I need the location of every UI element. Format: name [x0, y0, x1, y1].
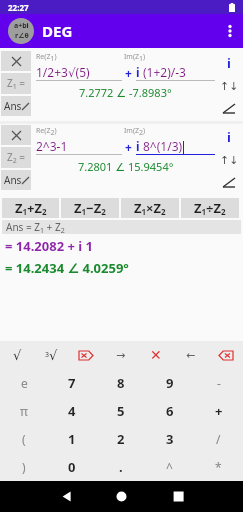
button[interactable]: - [194, 369, 243, 397]
staticText: Im(Z2) [124, 126, 146, 137]
button[interactable]: 7 [48, 369, 96, 397]
staticText: π [20, 403, 28, 419]
staticText: Ans [4, 173, 22, 187]
staticText: Z1×Z2 [134, 199, 166, 218]
staticText: e [21, 375, 28, 391]
staticText: 8^(1/3) [143, 138, 183, 154]
button[interactable]: π [0, 397, 48, 425]
staticText: + [122, 65, 136, 81]
button[interactable]: 1 [48, 425, 96, 453]
staticText: → [116, 349, 126, 362]
staticText: 4 [68, 402, 76, 420]
staticText: r∠θ [15, 31, 29, 41]
button[interactable]: . [96, 453, 145, 481]
staticText: ^ [166, 459, 173, 475]
staticText: 22:27 [8, 2, 29, 13]
staticText: Z2 = [7, 150, 26, 165]
staticText: ← [186, 349, 196, 362]
button[interactable]: Square root [0, 341, 34, 369]
staticText: ✕ [150, 347, 162, 363]
staticText: 0 [68, 458, 76, 476]
button[interactable]: 6 [145, 397, 194, 425]
button[interactable]: App icon [8, 18, 34, 44]
staticText: * [215, 459, 222, 475]
staticText: i [136, 138, 143, 154]
staticText: 3 [166, 430, 174, 448]
staticText: 7 [68, 374, 76, 392]
button[interactable]: 9 [145, 369, 194, 397]
staticText: 7.2772 ∠ -7.8983° [79, 85, 172, 100]
button[interactable]: Z2 equals [1, 147, 31, 168]
button[interactable]: Polar form [217, 98, 241, 118]
button[interactable]: 5 [96, 397, 145, 425]
staticText: Ans [4, 99, 22, 113]
button[interactable]: + [194, 397, 243, 425]
staticText: 3√ [45, 348, 58, 363]
staticText: i [227, 54, 231, 72]
button[interactable]: e [0, 369, 48, 397]
button[interactable]: Swap [217, 150, 241, 170]
staticText: 2 [117, 430, 125, 448]
staticText: Z1+Z2 [15, 199, 47, 218]
button[interactable]: Clear Z1 [1, 51, 31, 71]
button[interactable]: Clear Z2 [1, 125, 31, 145]
button[interactable]: Imaginary mode [217, 53, 241, 73]
button[interactable]: Z1÷Z2 [181, 198, 239, 218]
button[interactable]: / [194, 425, 243, 453]
staticText: Z1 = [7, 76, 26, 91]
staticText: Ans = Z1 + Z2 [6, 220, 65, 234]
staticText: Re(Z2) [36, 126, 124, 137]
button[interactable]: Move right [103, 341, 138, 369]
button[interactable]: 4 [48, 397, 96, 425]
button[interactable]: Backspace [208, 341, 243, 369]
button[interactable]: Use answer for Z2 [1, 170, 31, 190]
button[interactable]: 3 [145, 425, 194, 453]
button[interactable]: Cube root [34, 341, 68, 369]
staticText: = 14.2434 ∠ 4.0259° [5, 259, 129, 277]
staticText: 9 [166, 374, 174, 392]
staticText: Z1÷Z2 [194, 199, 226, 218]
button[interactable]: * [194, 453, 243, 481]
staticText: 5 [117, 402, 125, 420]
staticText: 1/2+3√(5) [36, 64, 90, 80]
staticText: / [216, 431, 221, 447]
staticText: i [136, 64, 143, 80]
staticText: ( [22, 431, 26, 447]
staticText: 8 [117, 374, 125, 392]
staticText: Im(Z1) [124, 52, 146, 63]
button[interactable]: Use answer for Z1 [1, 96, 31, 116]
button[interactable]: Clear [138, 341, 173, 369]
button[interactable]: More options [217, 14, 243, 48]
staticText: + [122, 139, 136, 155]
button[interactable]: Clear all [68, 341, 103, 369]
staticText: + [215, 402, 223, 420]
staticText: 7.2801 ∠ 15.9454° [78, 159, 174, 174]
staticText: (1+2)/-3 [143, 64, 186, 80]
button[interactable]: 0 [48, 453, 96, 481]
staticText: ) [22, 459, 26, 475]
staticText: - [217, 375, 221, 391]
staticText: 2^3-1 [36, 138, 68, 154]
button[interactable]: Z1×Z2 [121, 198, 179, 218]
button[interactable]: 2 [96, 425, 145, 453]
button[interactable]: Polar form [217, 172, 241, 192]
staticText: Z1−Z2 [74, 199, 106, 218]
staticText: i [227, 128, 231, 146]
button[interactable]: 8 [96, 369, 145, 397]
staticText: ↑↓ [220, 154, 239, 167]
staticText: a+bi [14, 21, 29, 31]
staticText: DEG [42, 21, 73, 41]
staticText: √ [13, 348, 22, 363]
staticText: 6 [166, 402, 174, 420]
button[interactable]: Swap [217, 76, 241, 96]
button[interactable]: Z1−Z2 [61, 198, 119, 218]
button[interactable]: ^ [145, 453, 194, 481]
staticText: ↑↓ [220, 80, 239, 93]
button[interactable]: Z1+Z2 [2, 198, 59, 218]
button[interactable]: Move left [173, 341, 208, 369]
button[interactable]: Imaginary mode [217, 127, 241, 147]
button[interactable]: Z1 equals [1, 73, 31, 94]
button[interactable]: ) [0, 453, 48, 481]
staticText: . [119, 458, 123, 476]
button[interactable]: ( [0, 425, 48, 453]
